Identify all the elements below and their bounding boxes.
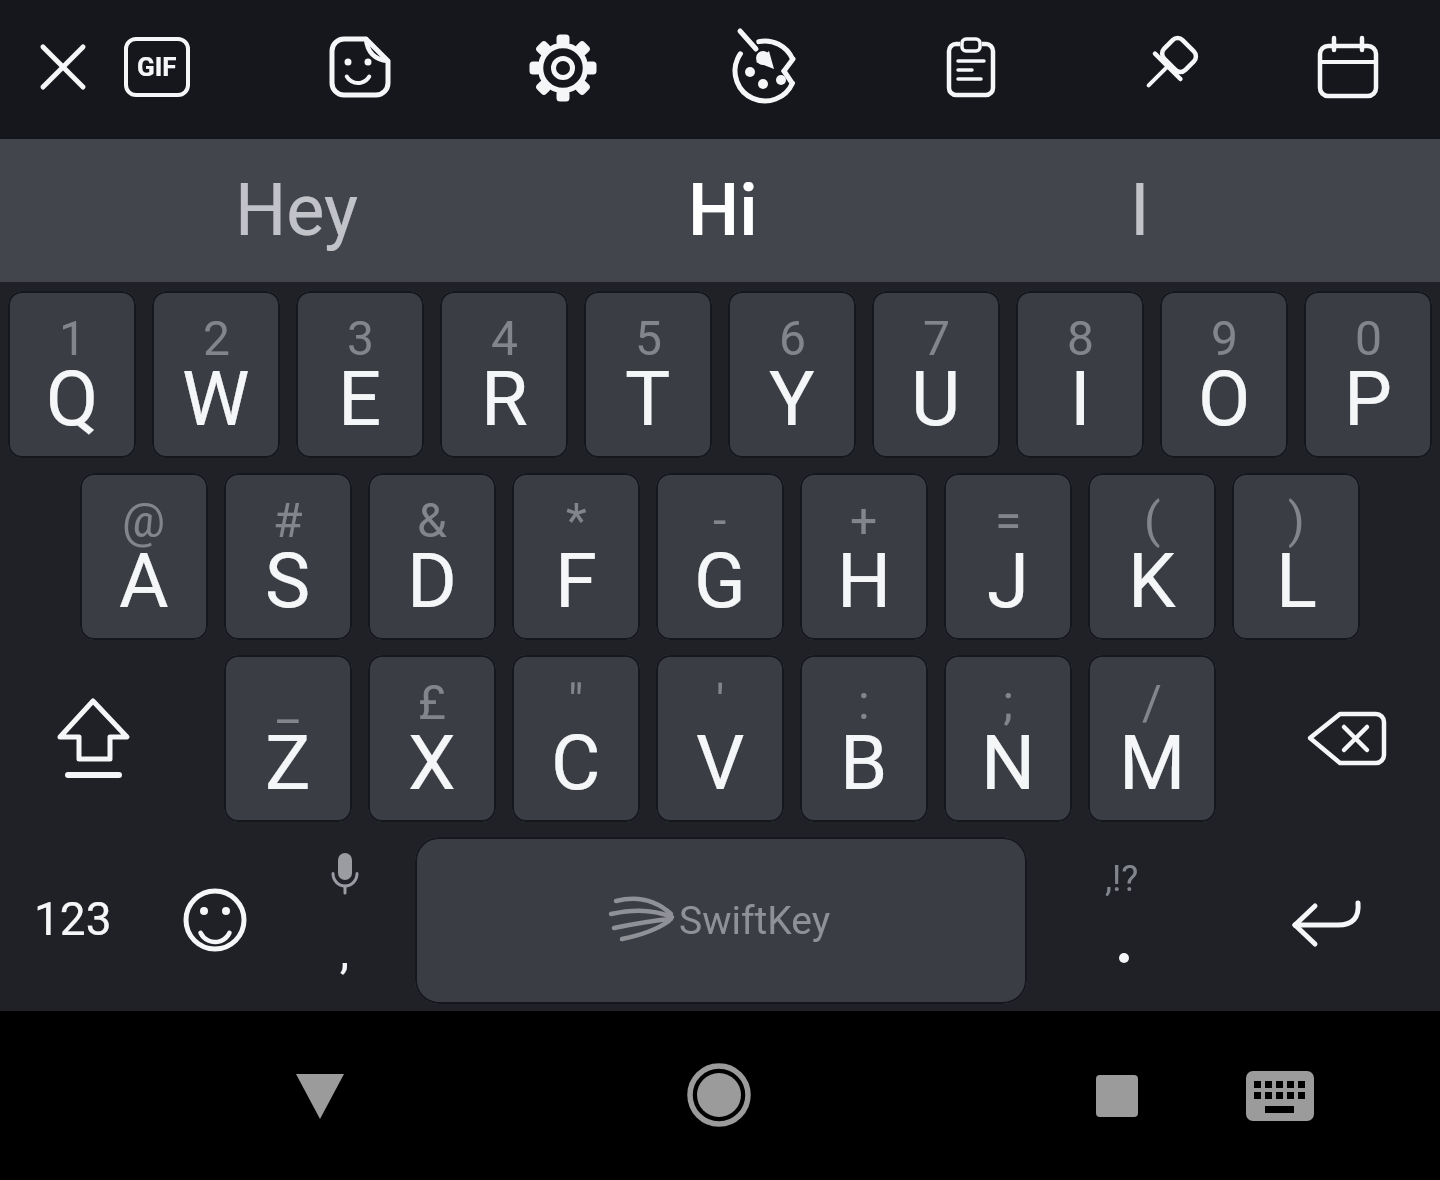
button[interactable]	[34, 655, 174, 822]
button[interactable]: 123	[0, 839, 273, 999]
button[interactable]: £	[368, 655, 496, 822]
staticText: 6	[779, 310, 806, 366]
staticText: 1	[59, 310, 86, 366]
button[interactable]: +	[800, 473, 928, 640]
staticText: J	[987, 536, 1029, 625]
button[interactable]: @	[80, 473, 208, 640]
staticText: N	[981, 718, 1036, 807]
staticText: '	[716, 674, 725, 730]
staticText: -	[713, 492, 727, 548]
button[interactable]	[1308, 28, 1388, 108]
button[interactable]: '	[656, 655, 784, 822]
button[interactable]	[1200, 1030, 1360, 1160]
staticText: L	[1276, 536, 1317, 625]
staticText: #	[273, 492, 303, 548]
button[interactable]: 2	[152, 291, 280, 458]
staticText: 2	[203, 310, 230, 366]
button[interactable]: 3	[296, 291, 424, 458]
button[interactable]: ;	[944, 655, 1072, 822]
button[interactable]	[1286, 655, 1426, 822]
staticText: "	[568, 674, 584, 730]
button[interactable]: "	[512, 655, 640, 822]
staticText: 7	[923, 310, 950, 366]
staticText: A	[119, 536, 169, 625]
button[interactable]: ,!?	[922, 799, 1322, 959]
button[interactable]: *	[512, 473, 640, 640]
button[interactable]: 8	[1016, 291, 1144, 458]
button[interactable]: 7	[872, 291, 1000, 458]
staticText: U	[911, 354, 961, 443]
staticText: C	[551, 718, 601, 807]
button[interactable]	[320, 28, 400, 108]
staticText: ,	[340, 925, 350, 979]
button[interactable]: /	[1088, 655, 1216, 822]
button[interactable]: )	[1232, 473, 1360, 640]
staticText: W	[182, 354, 250, 443]
staticText: 8	[1067, 310, 1094, 366]
staticText: R	[481, 354, 528, 443]
staticText: @	[122, 492, 166, 548]
staticText: P	[1344, 354, 1392, 443]
button[interactable]	[523, 28, 603, 108]
staticText: E	[338, 354, 382, 443]
button[interactable]: &	[368, 473, 496, 640]
button[interactable]	[1255, 837, 1395, 1004]
button[interactable]: 4	[440, 291, 568, 458]
button[interactable]: (	[1088, 473, 1216, 640]
staticText: X	[408, 718, 456, 807]
staticText: (	[1144, 492, 1161, 548]
button[interactable]	[723, 28, 803, 108]
button[interactable]: #	[224, 473, 352, 640]
staticText: F	[555, 536, 598, 625]
staticText: Hey	[235, 168, 359, 252]
staticText: &	[417, 492, 447, 548]
staticText: )	[1288, 492, 1305, 548]
button[interactable]: =	[944, 473, 1072, 640]
staticText: O	[1198, 354, 1251, 443]
button[interactable]: GIF	[124, 37, 190, 97]
staticText: £	[418, 674, 446, 730]
staticText: 9	[1211, 310, 1238, 366]
staticText: D	[407, 536, 457, 625]
staticText: ;	[1003, 674, 1014, 730]
button[interactable]: 0	[1304, 291, 1432, 458]
button[interactable]	[640, 1030, 800, 1160]
button[interactable]: 1	[8, 291, 136, 458]
staticText: T	[625, 354, 671, 443]
button[interactable]: 5	[584, 291, 712, 458]
button[interactable]	[931, 27, 1011, 107]
button[interactable]	[1127, 27, 1207, 107]
staticText: Q	[46, 354, 99, 443]
staticText: I	[1130, 168, 1150, 252]
button[interactable]	[23, 27, 103, 107]
button[interactable]: :	[800, 655, 928, 822]
staticText: Y	[769, 354, 815, 443]
button[interactable]: I	[940, 130, 1340, 290]
button[interactable]: -	[656, 473, 784, 640]
staticText: =	[995, 492, 1022, 548]
button[interactable]	[240, 1030, 400, 1160]
button[interactable]: ,	[145, 872, 545, 1032]
staticText: K	[1128, 536, 1176, 625]
button[interactable]: 9	[1160, 291, 1288, 458]
staticText: M	[1119, 718, 1186, 807]
staticText: Z	[265, 718, 311, 807]
button[interactable]	[415, 837, 1027, 1004]
staticText: GIF	[137, 52, 177, 82]
staticText: V	[696, 718, 745, 807]
staticText: S	[265, 536, 311, 625]
button[interactable]: Hey	[97, 130, 497, 290]
staticText: SwiftKey	[679, 898, 831, 944]
button[interactable]	[1037, 1030, 1197, 1160]
staticText: G	[694, 536, 746, 625]
staticText: 123	[34, 892, 112, 946]
staticText: ,!?	[1105, 858, 1139, 900]
staticText: 5	[635, 310, 662, 366]
staticText: 4	[491, 310, 518, 366]
button[interactable]: Hi	[523, 130, 923, 290]
button[interactable]: 6	[728, 291, 856, 458]
button[interactable]	[165, 837, 275, 1004]
button[interactable]: _	[224, 655, 352, 822]
button[interactable]	[300, 837, 400, 1004]
staticText: +	[850, 492, 878, 548]
